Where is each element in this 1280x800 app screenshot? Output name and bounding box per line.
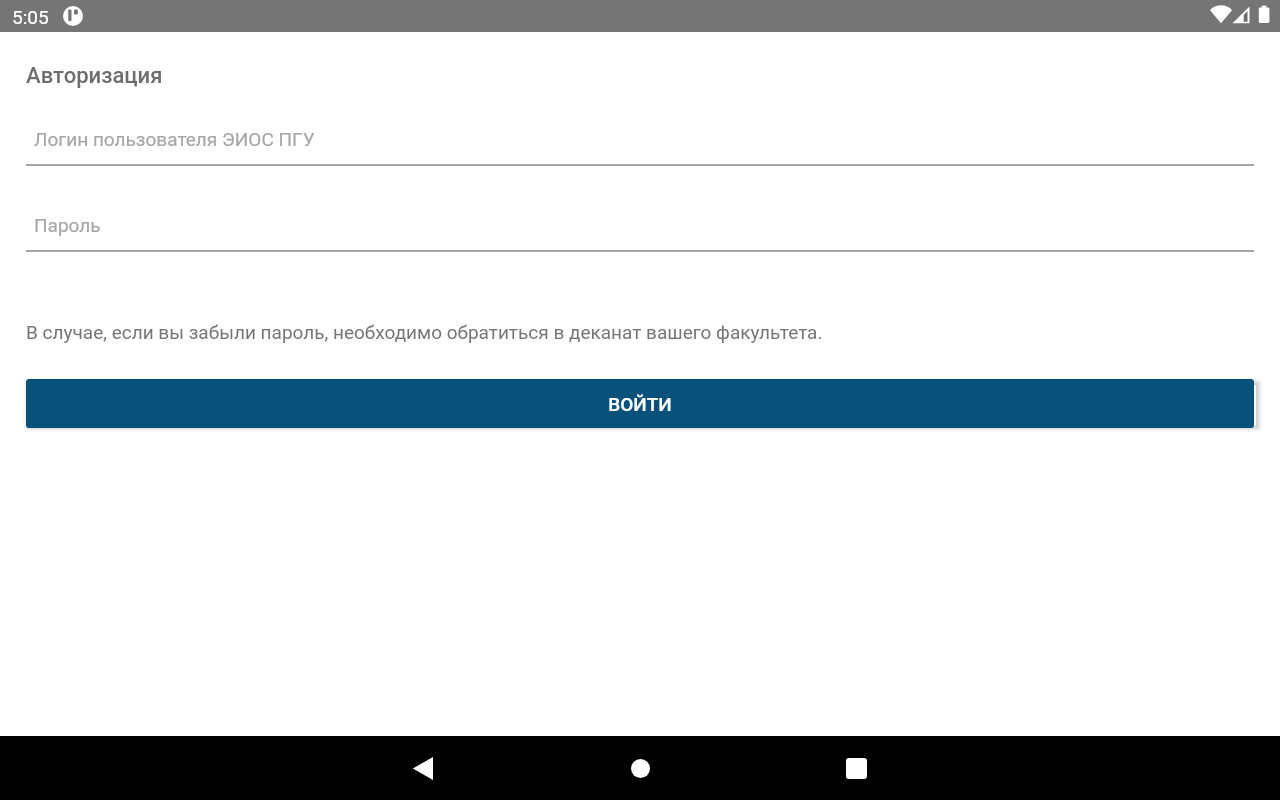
staticText: 5:05 [12,6,49,28]
button[interactable]: Логин пользователя ЭИОС ПГУ [26,114,1254,166]
staticText: Авторизация [26,63,163,89]
staticText: Пароль [34,214,101,236]
button[interactable]: Home [608,736,672,800]
staticText: Логин пользователя ЭИОС ПГУ [34,128,315,150]
staticText: В случае, если вы забыли пароль, необход… [26,321,823,343]
button[interactable]: Пароль [26,200,1254,252]
staticText: ВОЙТИ [608,393,672,415]
button[interactable]: Back [391,736,455,800]
button[interactable]: ВОЙТИ [26,379,1254,428]
button[interactable]: Recent apps [824,736,888,800]
